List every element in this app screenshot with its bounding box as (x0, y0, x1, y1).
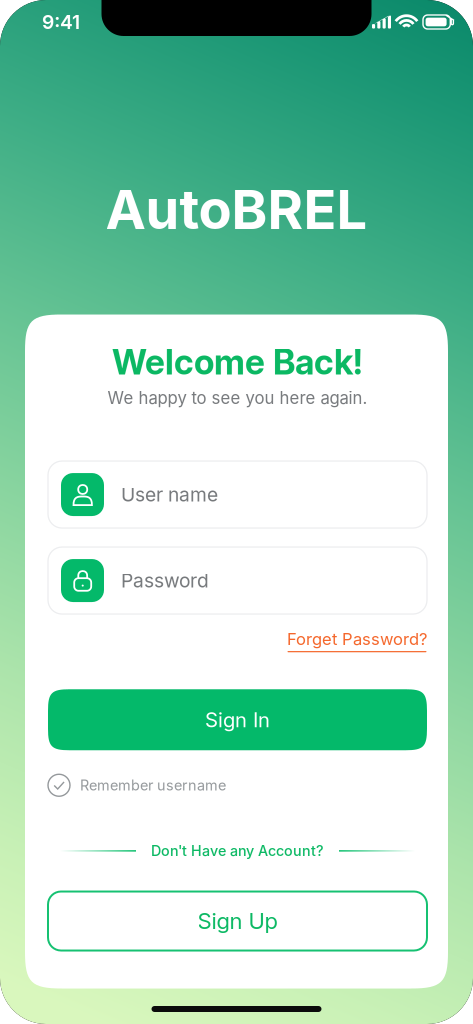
staticText: Don't Have any Account? (151, 842, 324, 860)
button[interactable]: Remember username (48, 774, 427, 796)
button[interactable]: User name (48, 461, 427, 528)
staticText: Password (121, 569, 209, 592)
staticText: We happy to see you here again. (107, 388, 367, 408)
staticText: 9:41 (42, 10, 80, 34)
button[interactable]: Sign Up (48, 891, 427, 950)
button[interactable]: Password (48, 547, 427, 614)
staticText: AutoBREL (105, 176, 367, 242)
button[interactable]: Sign In (48, 689, 427, 750)
staticText: Sign In (205, 707, 270, 732)
staticText: Welcome Back! (112, 341, 363, 383)
staticText: Remember username (80, 776, 226, 794)
staticText: Forget Password? (287, 629, 427, 649)
staticText: Sign Up (197, 908, 277, 934)
staticText: User name (121, 483, 218, 506)
button[interactable]: Forget Password? (287, 629, 427, 652)
